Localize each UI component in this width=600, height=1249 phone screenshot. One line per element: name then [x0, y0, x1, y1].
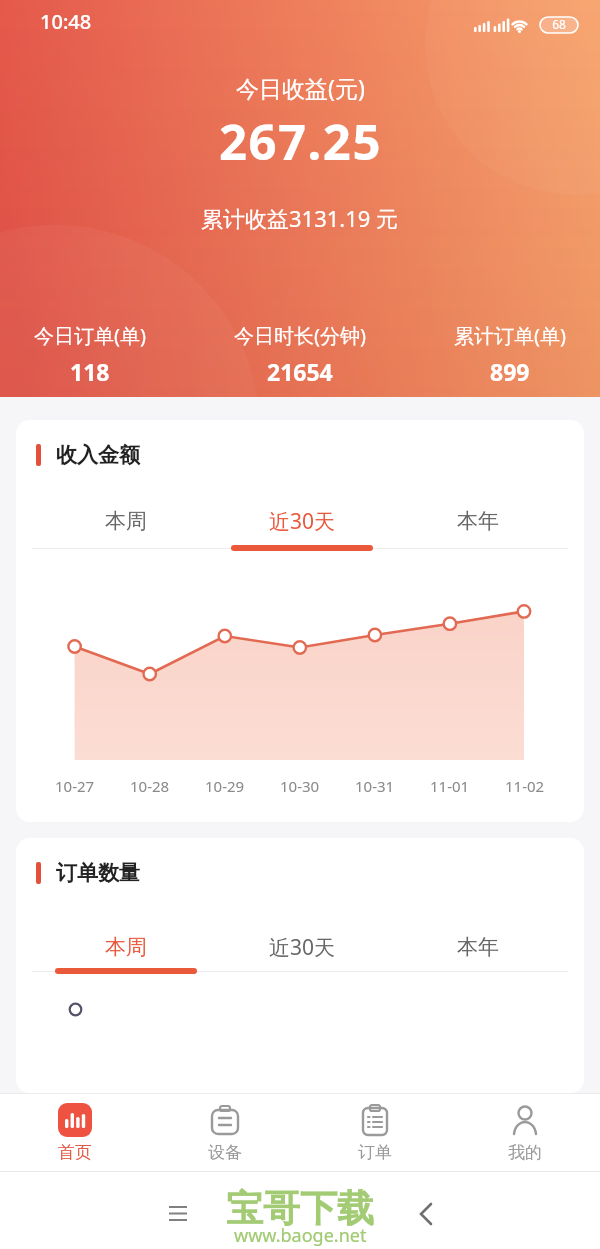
staticText: 本周	[105, 934, 147, 960]
button[interactable]: 我的	[450, 1103, 600, 1171]
staticText: 订单	[358, 1142, 392, 1163]
button[interactable]: 设备	[150, 1103, 300, 1171]
staticText: 近30天	[269, 933, 336, 962]
staticText: 267.25	[219, 108, 382, 175]
staticText: 10-27	[55, 776, 95, 796]
staticText: 宝哥下载	[226, 1185, 374, 1232]
staticText: 68	[549, 16, 569, 32]
staticText: 累计收益3131.19 元	[201, 203, 399, 233]
staticText: 本年	[457, 508, 499, 534]
button[interactable]: 今日时长(分钟)	[234, 322, 366, 387]
button[interactable]: 今日订单(单)	[34, 322, 146, 387]
button[interactable]: 累计订单(单)	[454, 322, 566, 387]
staticText: 我的	[508, 1142, 542, 1163]
button[interactable]: 本年	[390, 504, 566, 538]
staticText: 11-01	[430, 776, 470, 796]
staticText: 10-28	[130, 776, 170, 796]
staticText: 11-02	[505, 776, 545, 796]
button[interactable]: 本周	[38, 930, 214, 964]
button[interactable]: 首页	[0, 1103, 150, 1171]
staticText: 近30天	[269, 507, 336, 536]
staticText: 118	[70, 356, 110, 387]
button[interactable]: 近30天	[214, 930, 390, 964]
staticText: 10-29	[205, 776, 245, 796]
button[interactable]	[416, 1202, 436, 1226]
staticText: 今日时长(分钟)	[234, 322, 366, 349]
staticText: 订单数量	[56, 860, 140, 886]
staticText: 10:48	[40, 8, 92, 35]
staticText: 首页	[58, 1142, 92, 1163]
staticText: 本周	[105, 508, 147, 534]
staticText: 今日订单(单)	[34, 322, 146, 349]
button[interactable]	[168, 1204, 188, 1224]
button[interactable]: 本周	[38, 504, 214, 538]
button[interactable]: 本年	[390, 930, 566, 964]
staticText: 10-31	[355, 776, 395, 796]
staticText: 21654	[267, 356, 333, 387]
staticText: 10-30	[280, 776, 320, 796]
staticText: 累计订单(单)	[454, 322, 566, 349]
staticText: 本年	[457, 934, 499, 960]
staticText: www.baoge.net	[234, 1223, 367, 1248]
staticText: 899	[490, 356, 530, 387]
button[interactable]: 近30天	[214, 504, 390, 538]
staticText: 收入金额	[56, 442, 140, 468]
staticText: 设备	[208, 1142, 242, 1163]
staticText: 今日收益(元)	[236, 72, 365, 103]
button[interactable]: 订单	[300, 1103, 450, 1171]
